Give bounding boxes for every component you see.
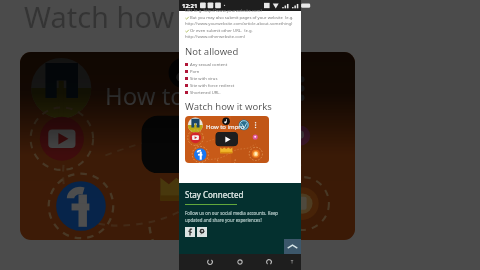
staticText: Watch how it works	[185, 100, 272, 113]
button[interactable]: Watch video: How to improve	[185, 116, 269, 163]
button[interactable]: Home	[232, 254, 248, 270]
staticText: Site with force redirect	[190, 83, 235, 89]
staticText: How to improve	[105, 79, 284, 112]
staticText: 12:21	[182, 2, 198, 10]
staticText: Any sexual content	[190, 62, 228, 68]
button[interactable]: Pinterest	[197, 227, 207, 237]
staticText: Or even submit other URL. (e.g.	[190, 28, 253, 34]
staticText: Shortened URL.	[190, 90, 221, 96]
button[interactable]: Capture	[284, 254, 300, 270]
staticText: URL (e.g. http://www.yourwebsite.com)	[185, 8, 262, 14]
staticText: Watch how it works	[24, 0, 289, 36]
button[interactable]: Scroll to top	[284, 239, 301, 254]
button[interactable]: Recent apps	[202, 254, 218, 270]
staticText: http://www.otherwebsite.com)	[185, 34, 246, 40]
staticText: How to impro	[206, 123, 245, 131]
button[interactable]: Facebook	[185, 227, 195, 237]
staticText: Porn	[190, 69, 200, 75]
staticText: Site with virus	[190, 76, 218, 82]
button[interactable]: Back	[261, 254, 277, 270]
staticText: Stay Connected	[185, 189, 244, 200]
staticText: Not allowed	[185, 45, 239, 58]
staticText: Follow us on our social media accounts. …	[185, 210, 295, 224]
staticText: http://www.yourwebsite.com/article-about…	[185, 21, 293, 27]
staticText: But you may also submit pages of your we…	[190, 15, 294, 21]
